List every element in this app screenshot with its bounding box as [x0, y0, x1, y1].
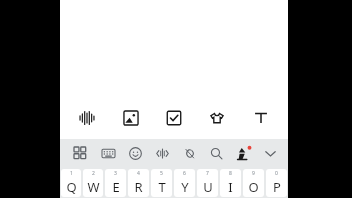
- button[interactable]: Checklist: [158, 102, 190, 134]
- staticText: 7: [206, 170, 209, 177]
- staticText: Q: [66, 178, 77, 196]
- button[interactable]: 8: [220, 169, 241, 197]
- staticText: 8: [229, 170, 232, 177]
- staticText: 4: [137, 170, 140, 177]
- button[interactable]: Text style: [245, 102, 277, 134]
- button[interactable]: Keyboard: [94, 139, 122, 168]
- staticText: 2: [92, 170, 95, 177]
- button[interactable]: Apps: [66, 139, 94, 168]
- staticText: 1: [70, 170, 73, 177]
- staticText: P: [273, 178, 281, 196]
- staticText: 3: [114, 170, 117, 177]
- staticText: Y: [181, 178, 189, 196]
- button[interactable]: 3: [105, 169, 126, 197]
- staticText: 6: [183, 170, 186, 177]
- button[interactable]: Voice message: [71, 102, 103, 134]
- button[interactable]: Sticker: [201, 102, 233, 134]
- staticText: U: [203, 178, 213, 196]
- staticText: E: [112, 178, 120, 196]
- button[interactable]: Translate: [230, 139, 257, 168]
- button[interactable]: 1: [61, 169, 81, 197]
- button[interactable]: 2: [83, 169, 103, 197]
- button[interactable]: 7: [197, 169, 218, 197]
- staticText: R: [134, 178, 143, 196]
- button[interactable]: Insert image: [115, 102, 147, 134]
- staticText: 5: [160, 170, 163, 177]
- staticText: W: [87, 178, 100, 196]
- button[interactable]: GIF: [149, 139, 176, 168]
- staticText: 0: [275, 170, 278, 177]
- staticText: T: [158, 178, 166, 196]
- button[interactable]: Emoji: [122, 139, 149, 168]
- staticText: I: [228, 178, 233, 196]
- button[interactable]: 5: [151, 169, 172, 197]
- button[interactable]: 0: [266, 169, 287, 197]
- staticText: 9: [252, 170, 255, 177]
- button[interactable]: 4: [128, 169, 149, 197]
- button[interactable]: 6: [174, 169, 195, 197]
- button[interactable]: Collapse keyboard: [257, 139, 284, 168]
- button[interactable]: Search: [203, 139, 230, 168]
- button[interactable]: Clipboard: [176, 139, 203, 168]
- staticText: O: [248, 178, 259, 196]
- button[interactable]: 9: [243, 169, 264, 197]
